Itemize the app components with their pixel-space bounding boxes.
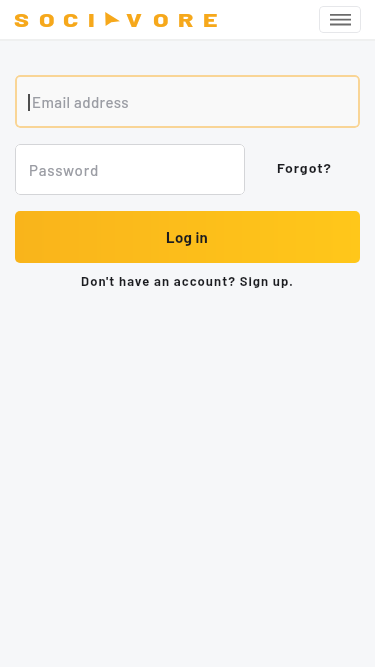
button[interactable]: Email address: [15, 75, 360, 128]
staticText: O: [153, 8, 169, 31]
button[interactable]: Forgot?: [271, 156, 360, 183]
button[interactable]: Log in: [15, 211, 360, 263]
button[interactable]: Password: [15, 144, 245, 195]
staticText: R: [178, 8, 194, 31]
staticText: Forgot?: [277, 159, 332, 176]
staticText: O: [39, 8, 55, 31]
staticText: C: [63, 8, 79, 31]
staticText: Don't have an account? Sign up.: [81, 273, 294, 289]
staticText: I: [88, 8, 96, 31]
button[interactable]: Open menu: [319, 6, 361, 33]
staticText: E: [203, 8, 217, 31]
staticText: Email address: [32, 93, 130, 111]
staticText: Log in: [166, 228, 209, 246]
button[interactable]: Don't have an account? Sign up.: [0, 268, 375, 294]
staticText: Password: [29, 161, 100, 179]
staticText: S: [14, 8, 30, 31]
staticText: V: [126, 8, 143, 31]
